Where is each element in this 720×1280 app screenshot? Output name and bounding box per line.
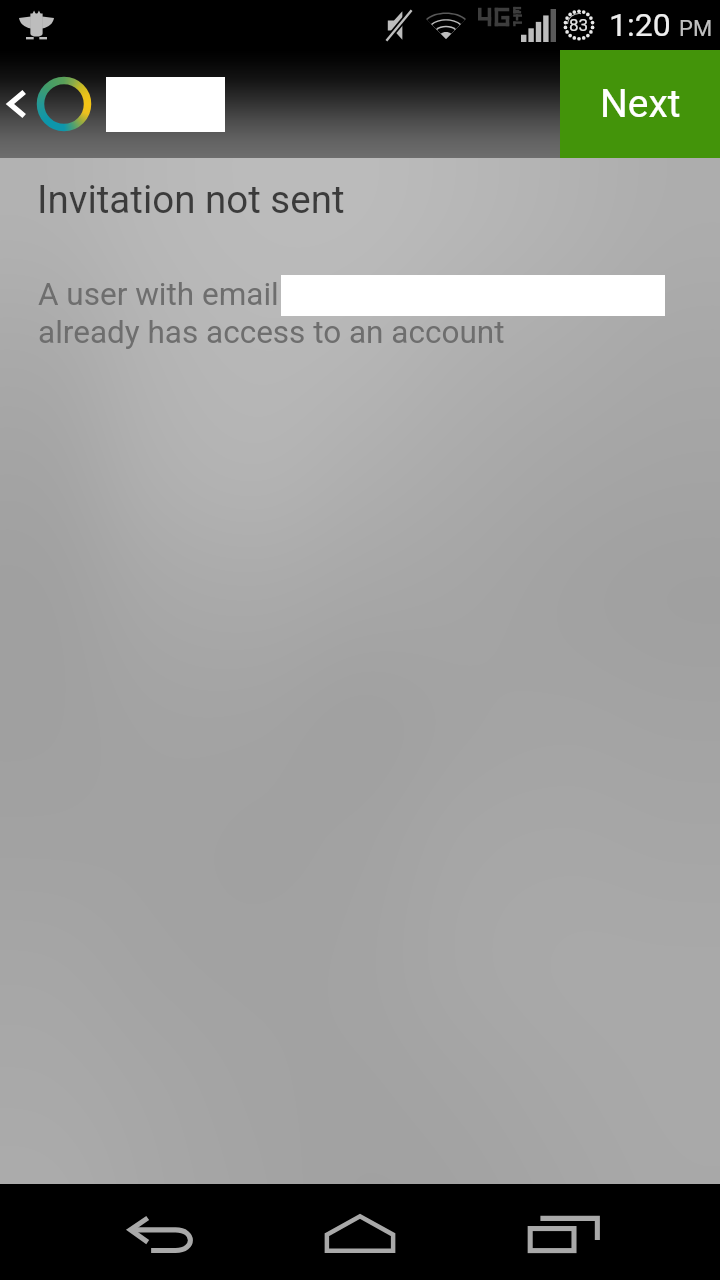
- staticText: A user with email: [38, 276, 279, 313]
- button[interactable]: Home: [310, 1185, 410, 1280]
- staticText: PM: [679, 16, 713, 42]
- button[interactable]: Recent apps: [514, 1186, 614, 1280]
- staticText: 1:20: [609, 6, 671, 44]
- staticText: 83: [569, 15, 589, 35]
- staticText: Invitation not sent: [37, 177, 345, 222]
- staticText: already has access to an account: [38, 314, 505, 351]
- button[interactable]: Back: [112, 1187, 212, 1280]
- button[interactable]: Next: [560, 50, 720, 158]
- staticText: Next: [600, 81, 681, 127]
- button[interactable]: Back: [0, 50, 33, 158]
